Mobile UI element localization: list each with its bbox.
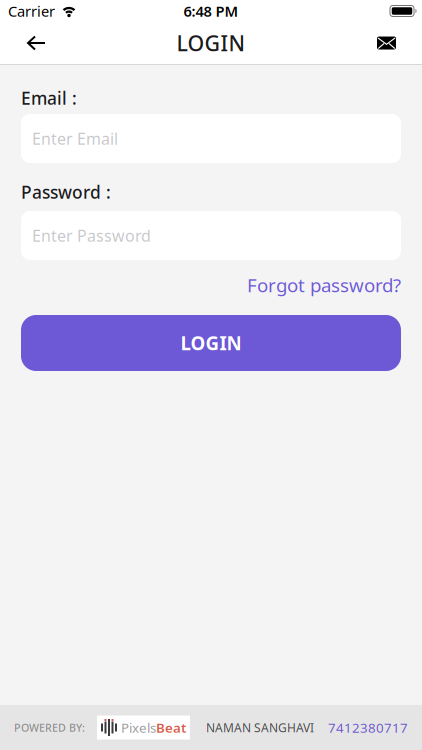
staticText: LOGIN xyxy=(176,29,245,57)
staticText: Carrier xyxy=(8,1,55,21)
staticText: Enter Email xyxy=(32,128,118,149)
button[interactable]: Back xyxy=(0,22,46,64)
staticText: Pixels xyxy=(121,719,156,736)
staticText: Forgot password? xyxy=(247,273,401,297)
staticText: Beat xyxy=(156,719,186,736)
button[interactable]: Mail xyxy=(377,22,422,63)
button[interactable]: Enter Password xyxy=(21,211,401,260)
button[interactable]: 7412380717 xyxy=(314,719,408,736)
staticText: 6:48 PM xyxy=(183,1,238,21)
staticText: Email : xyxy=(21,86,77,109)
staticText: POWERED BY: xyxy=(14,720,85,735)
button[interactable]: Forgot password? xyxy=(247,276,401,294)
staticText: LOGIN xyxy=(180,331,241,355)
staticText: Enter Password xyxy=(32,225,151,246)
button[interactable]: LOGIN xyxy=(21,315,401,371)
staticText: NAMAN SANGHAVI xyxy=(206,719,314,735)
staticText: 7412380717 xyxy=(328,719,408,736)
staticText: Password : xyxy=(21,180,111,203)
button[interactable]: Enter Email xyxy=(21,114,401,163)
